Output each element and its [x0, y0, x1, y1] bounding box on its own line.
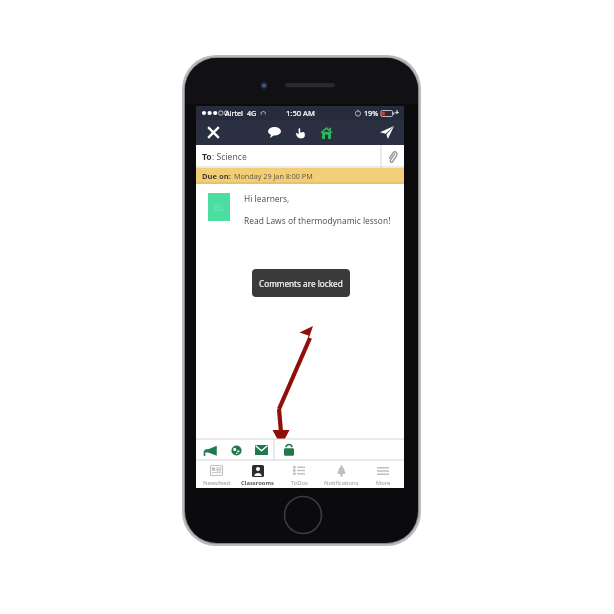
staticText: 1:50 AM — [286, 108, 315, 118]
button[interactable]: ToDos — [278, 461, 320, 488]
button[interactable]: Like — [287, 120, 313, 145]
button[interactable]: Message — [248, 439, 274, 461]
staticText: 19% — [364, 108, 379, 118]
staticText: Notifications — [324, 479, 359, 487]
button[interactable]: Public — [224, 439, 248, 461]
staticText: Due on: — [202, 171, 231, 181]
button[interactable]: Newsfeed — [196, 461, 237, 488]
button[interactable]: Lock comments — [275, 439, 303, 461]
button[interactable]: Comments — [261, 120, 287, 145]
staticText: Hi learners, — [244, 193, 290, 204]
button[interactable]: Announce — [196, 439, 224, 461]
staticText: ToDos — [291, 479, 308, 487]
staticText: More — [376, 479, 391, 487]
staticText: + — [395, 108, 400, 118]
button[interactable]: More — [362, 461, 404, 488]
staticText: Airtel — [225, 108, 243, 118]
staticText: BS — [214, 202, 224, 213]
staticText: To — [202, 151, 212, 163]
button[interactable]: Close — [196, 120, 230, 145]
staticText: : Science — [212, 151, 247, 163]
button[interactable]: Home — [313, 120, 339, 145]
staticText: Read Laws of thermodynamic lesson! — [244, 215, 391, 226]
staticText: Comments are locked — [259, 278, 343, 289]
staticText: Newsfeed — [203, 479, 230, 487]
staticText: Classrooms — [241, 479, 275, 487]
button[interactable]: Classrooms — [237, 461, 278, 488]
button[interactable]: Send — [370, 120, 404, 145]
button[interactable]: Notifications — [320, 461, 362, 488]
staticText: Monday 29 Jan 8:00 PM — [234, 171, 313, 181]
staticText: 4G — [247, 108, 257, 118]
button[interactable]: Attach file — [381, 145, 404, 168]
